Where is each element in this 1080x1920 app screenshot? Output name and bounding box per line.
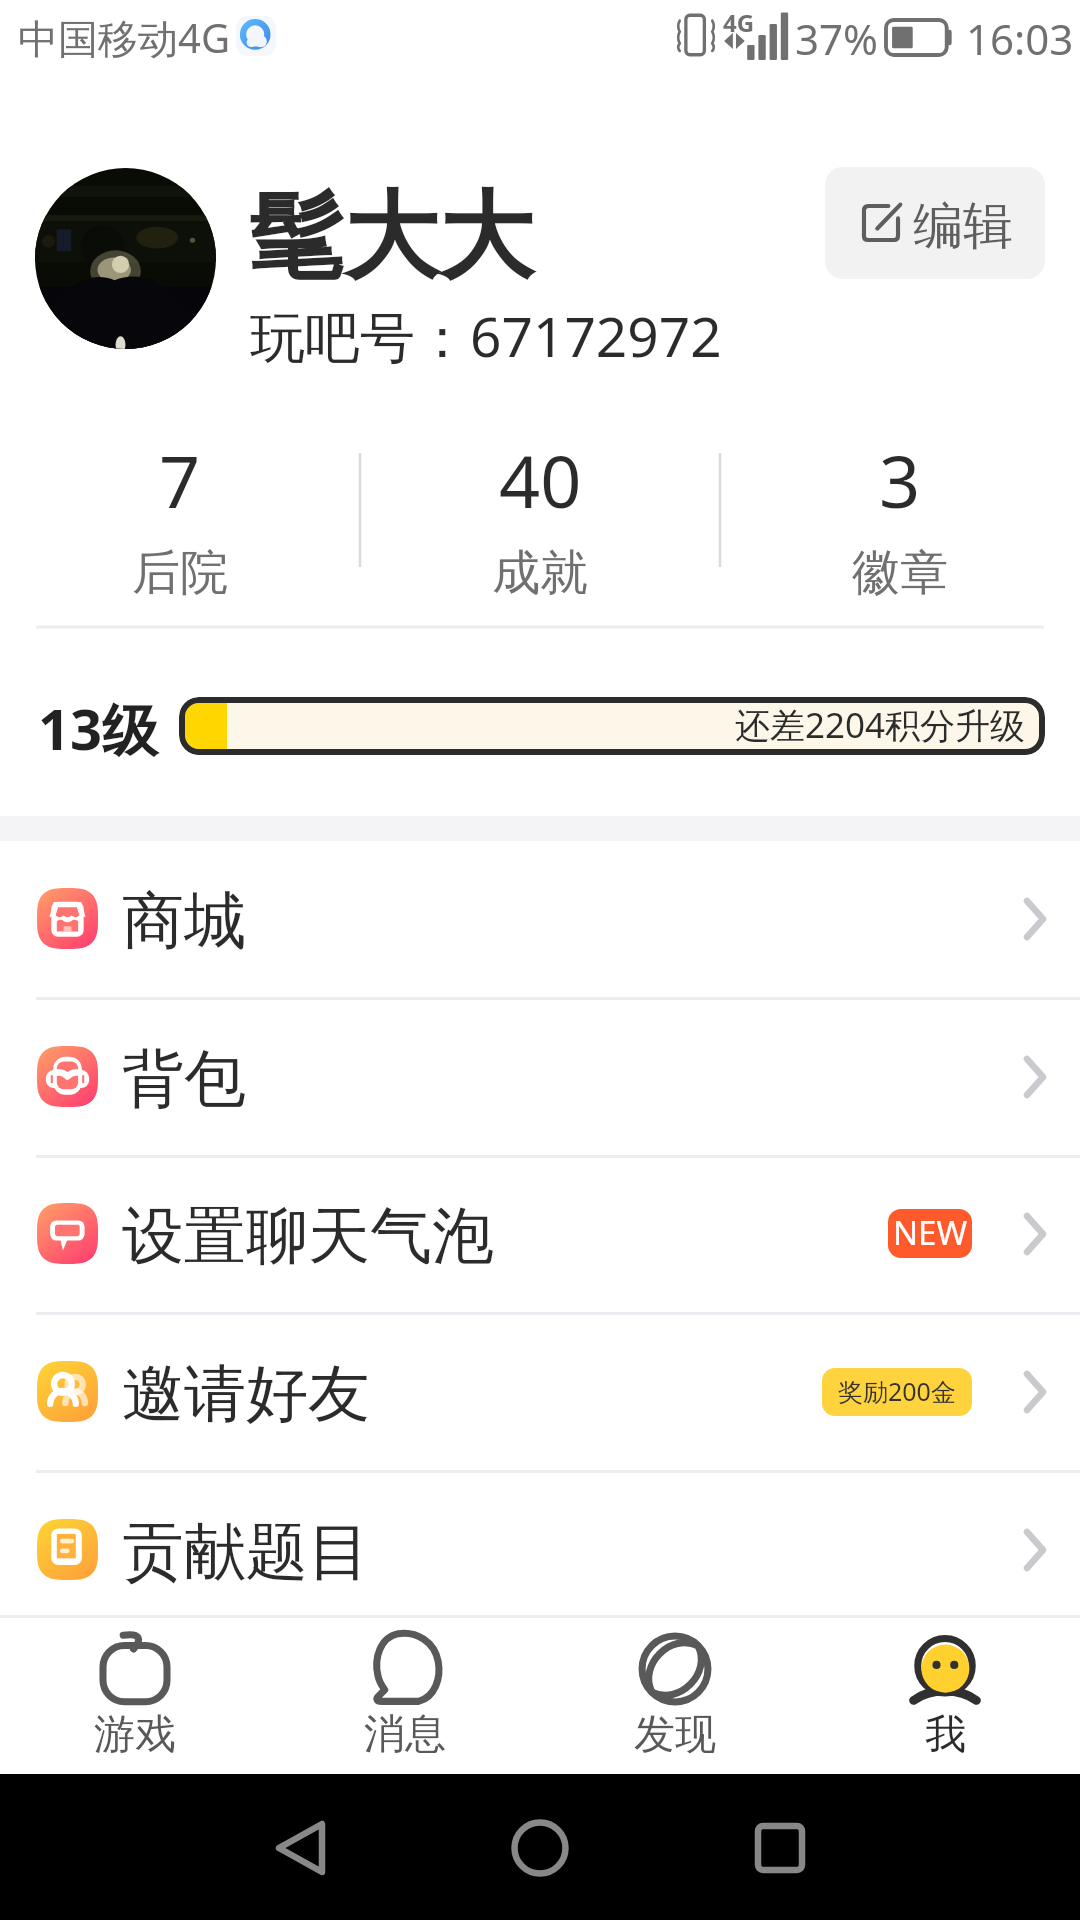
staticText: 后院: [132, 543, 228, 603]
staticText: 成就: [492, 543, 588, 603]
staticText: 邀请好友: [122, 1355, 370, 1433]
staticText: 13级: [38, 690, 159, 766]
button[interactable]: 设置聊天气泡: [0, 1155, 1080, 1312]
staticText: 3: [879, 431, 921, 529]
staticText: 40: [499, 431, 582, 529]
staticText: 髦大大: [249, 178, 534, 298]
staticText: 37%: [795, 10, 878, 67]
button[interactable]: 3: [720, 420, 1080, 628]
staticText: 编辑: [913, 195, 1013, 258]
staticText: 奖励200金: [838, 1374, 956, 1408]
button[interactable]: 13级: [0, 628, 1080, 816]
button[interactable]: 消息: [270, 1618, 540, 1774]
button[interactable]: Profile photo: [35, 168, 216, 349]
staticText: 商城: [122, 882, 246, 960]
staticText: NEW: [893, 1210, 968, 1255]
staticText: 发现: [634, 1709, 716, 1761]
button[interactable]: 发现: [540, 1618, 810, 1774]
staticText: 还差2204积分升级: [735, 701, 1026, 749]
staticText: 徽章: [852, 543, 948, 603]
button[interactable]: 贡献题目: [0, 1471, 1080, 1628]
button[interactable]: 游戏: [0, 1618, 270, 1774]
staticText: 16:03: [966, 10, 1074, 67]
staticText: 背包: [122, 1040, 246, 1118]
staticText: 中国移动4G: [18, 10, 230, 65]
button[interactable]: 编辑: [825, 167, 1045, 279]
button[interactable]: 7: [0, 420, 360, 628]
button[interactable]: 40: [360, 420, 720, 628]
staticText: 设置聊天气泡: [122, 1197, 494, 1275]
staticText: 玩吧号：67172972: [250, 298, 722, 373]
staticText: 4G: [723, 6, 755, 39]
button[interactable]: 邀请好友: [0, 1313, 1080, 1470]
staticText: 消息: [364, 1709, 446, 1761]
staticText: 7: [159, 431, 201, 529]
staticText: 游戏: [94, 1709, 176, 1761]
button[interactable]: 商城: [0, 840, 1080, 997]
button[interactable]: 背包: [0, 998, 1080, 1155]
staticText: 我: [925, 1709, 966, 1761]
staticText: 贡献题目: [122, 1513, 370, 1591]
button[interactable]: 我: [810, 1618, 1080, 1774]
